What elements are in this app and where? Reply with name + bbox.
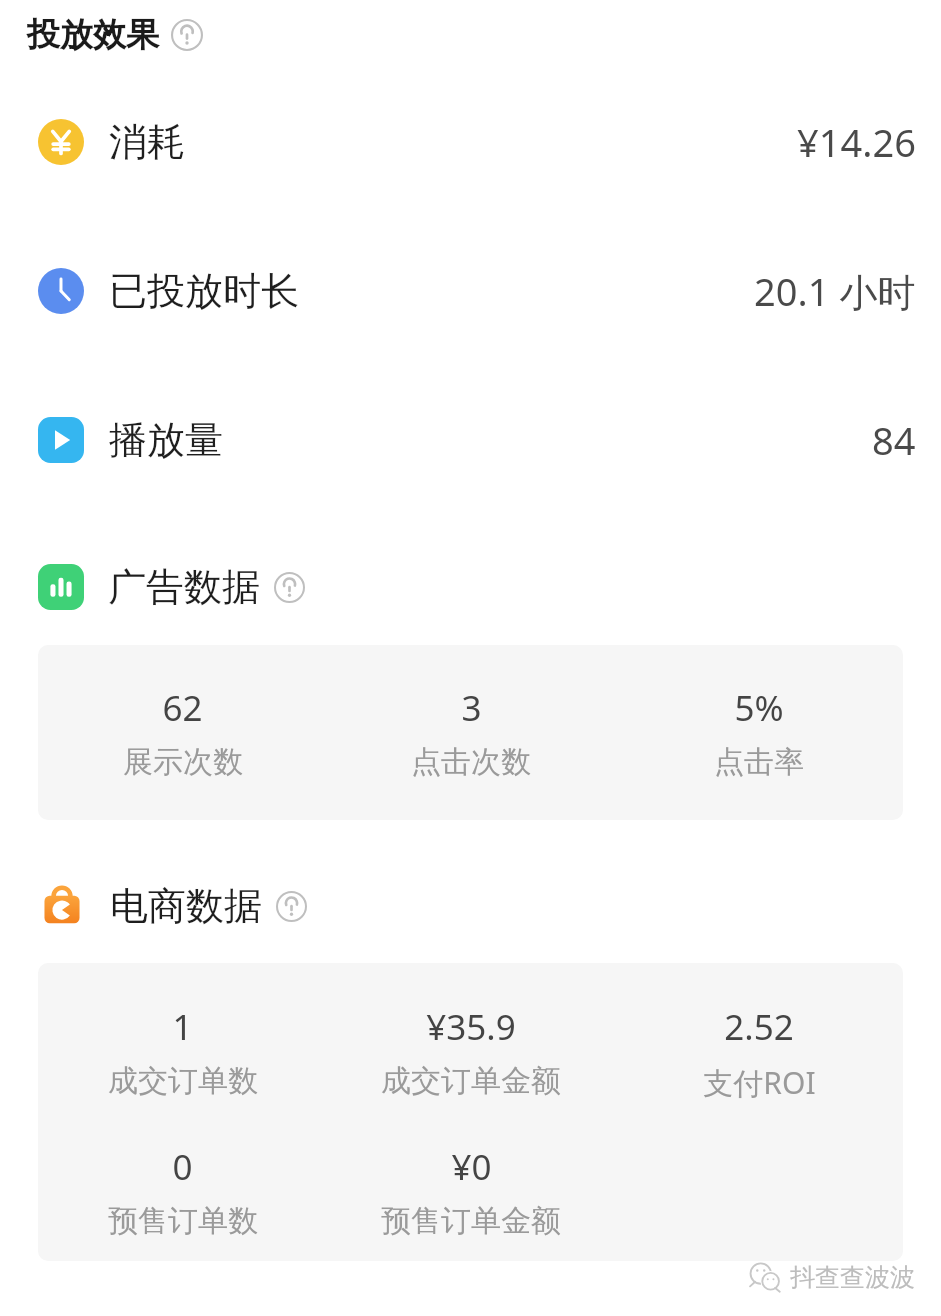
button[interactable]: 消耗 [0, 116, 941, 168]
button[interactable]: Help [171, 19, 203, 51]
staticText: 已投放时长 [109, 267, 299, 315]
staticText: 预售订单数 [108, 1202, 258, 1240]
staticText: 广告数据 [108, 563, 260, 611]
staticText: 1 [172, 1003, 193, 1051]
staticText: 投放效果 [27, 14, 159, 56]
staticText: 2.52 [724, 1003, 794, 1051]
button[interactable]: 0 [38, 1143, 327, 1240]
staticText: 20.1 小时 [754, 265, 916, 317]
button[interactable]: ¥35.9 [327, 1003, 615, 1100]
staticText: 预售订单金额 [381, 1202, 561, 1240]
staticText: 支付ROI [703, 1062, 816, 1103]
staticText: ¥0 [451, 1143, 492, 1191]
button[interactable]: 2.52 [615, 1003, 903, 1103]
staticText: 点击次数 [411, 743, 531, 781]
staticText: 点击率 [714, 743, 804, 781]
button[interactable]: Help [276, 891, 307, 922]
button[interactable]: ¥0 [327, 1143, 615, 1240]
button[interactable]: 广告数据 [0, 563, 941, 611]
button[interactable]: 电商数据 [0, 882, 941, 930]
button[interactable]: 3 [327, 684, 615, 781]
button[interactable]: 已投放时长 [0, 265, 941, 317]
button[interactable]: 5% [615, 684, 903, 781]
button[interactable]: 1 [38, 1003, 327, 1100]
staticText: 播放量 [109, 416, 223, 464]
staticText: 成交订单金额 [381, 1062, 561, 1100]
staticText: 0 [172, 1143, 193, 1191]
staticText: ¥35.9 [426, 1003, 516, 1051]
staticText: 5% [734, 684, 784, 732]
button[interactable]: 62 [38, 684, 327, 781]
staticText: 3 [461, 684, 482, 732]
staticText: ¥14.26 [797, 116, 916, 168]
other: WeChat watermark [748, 1260, 782, 1294]
staticText: 84 [872, 414, 916, 466]
staticText: 62 [162, 684, 203, 732]
staticText: 抖查查波波 [790, 1262, 915, 1293]
button[interactable]: Help [274, 572, 305, 603]
staticText: 展示次数 [123, 743, 243, 781]
staticText: 电商数据 [110, 882, 262, 930]
staticText: 成交订单数 [108, 1062, 258, 1100]
button[interactable]: 1 [38, 963, 903, 1261]
button[interactable]: 62 [38, 645, 903, 820]
staticText: 消耗 [109, 118, 185, 166]
button[interactable]: 播放量 [0, 414, 941, 466]
